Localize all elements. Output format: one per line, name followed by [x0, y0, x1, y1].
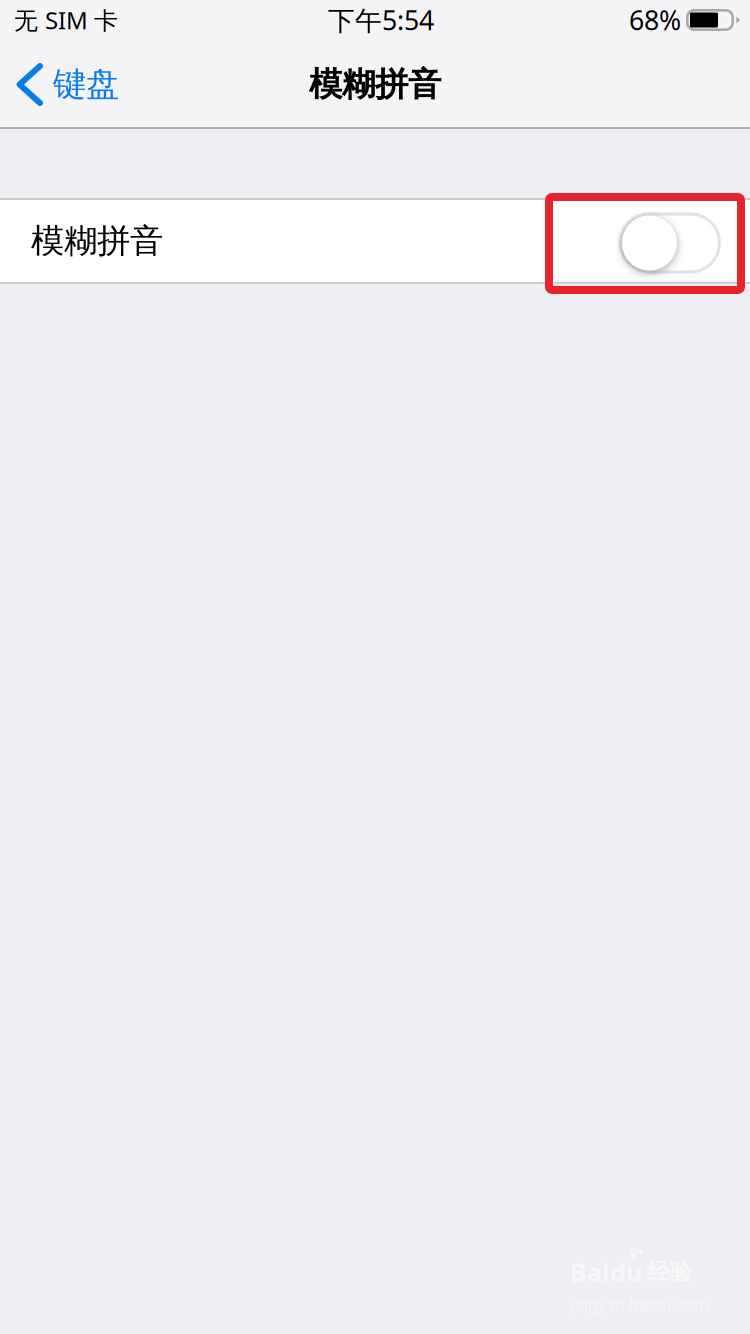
button[interactable]: 模糊拼音, 关: [619, 210, 721, 271]
staticText: 下午5:54: [328, 2, 434, 38]
staticText: 键盘: [53, 64, 119, 105]
staticText: 模糊拼音: [309, 64, 441, 105]
staticText: Baidu: [570, 1255, 642, 1289]
staticText: 经验: [647, 1258, 693, 1286]
staticText: 无 SIM 卡: [14, 4, 118, 36]
button[interactable]: 模糊拼音: [0, 198, 750, 284]
staticText: 68%: [629, 2, 681, 38]
staticText: 模糊拼音: [31, 220, 163, 261]
button[interactable]: 键盘: [0, 40, 135, 129]
